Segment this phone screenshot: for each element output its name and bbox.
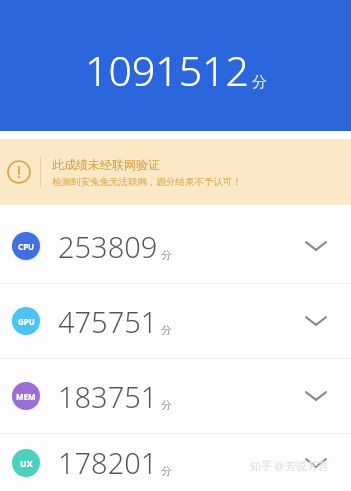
staticText: 知乎 @芳说芳言 bbox=[250, 458, 329, 473]
staticText: GPU bbox=[18, 316, 35, 327]
staticText: 分 bbox=[161, 248, 172, 262]
staticText: 分 bbox=[161, 323, 172, 337]
staticText: 检测到安兔兔无法联网，跑分结果不予认可！ bbox=[52, 176, 242, 188]
button[interactable]: 1091512 bbox=[0, 0, 351, 131]
staticText: 分 bbox=[161, 464, 172, 478]
staticText: 183751 bbox=[58, 377, 158, 416]
staticText: MEM bbox=[16, 391, 36, 402]
staticText: 1091512 bbox=[85, 42, 249, 98]
button[interactable]: MEM bbox=[0, 359, 351, 433]
button[interactable]: GPU bbox=[0, 284, 351, 358]
other: Warning bbox=[6, 159, 32, 185]
button[interactable]: Expand UX details bbox=[293, 440, 339, 486]
staticText: 此成绩未经联网验证 bbox=[52, 157, 160, 172]
staticText: 178201 bbox=[58, 443, 158, 482]
button[interactable]: Expand GPU details bbox=[293, 298, 339, 344]
button[interactable]: Warning bbox=[0, 139, 351, 205]
staticText: 分 bbox=[161, 398, 172, 412]
button[interactable]: Expand CPU details bbox=[293, 223, 339, 269]
button[interactable]: Expand MEM details bbox=[293, 373, 339, 419]
staticText: CPU bbox=[18, 241, 35, 252]
staticText: 475751 bbox=[58, 302, 158, 341]
staticText: 分 bbox=[252, 73, 267, 92]
staticText: 253809 bbox=[58, 227, 158, 266]
button[interactable]: UX bbox=[0, 434, 351, 491]
button[interactable]: CPU bbox=[0, 209, 351, 283]
staticText: UX bbox=[20, 457, 33, 469]
